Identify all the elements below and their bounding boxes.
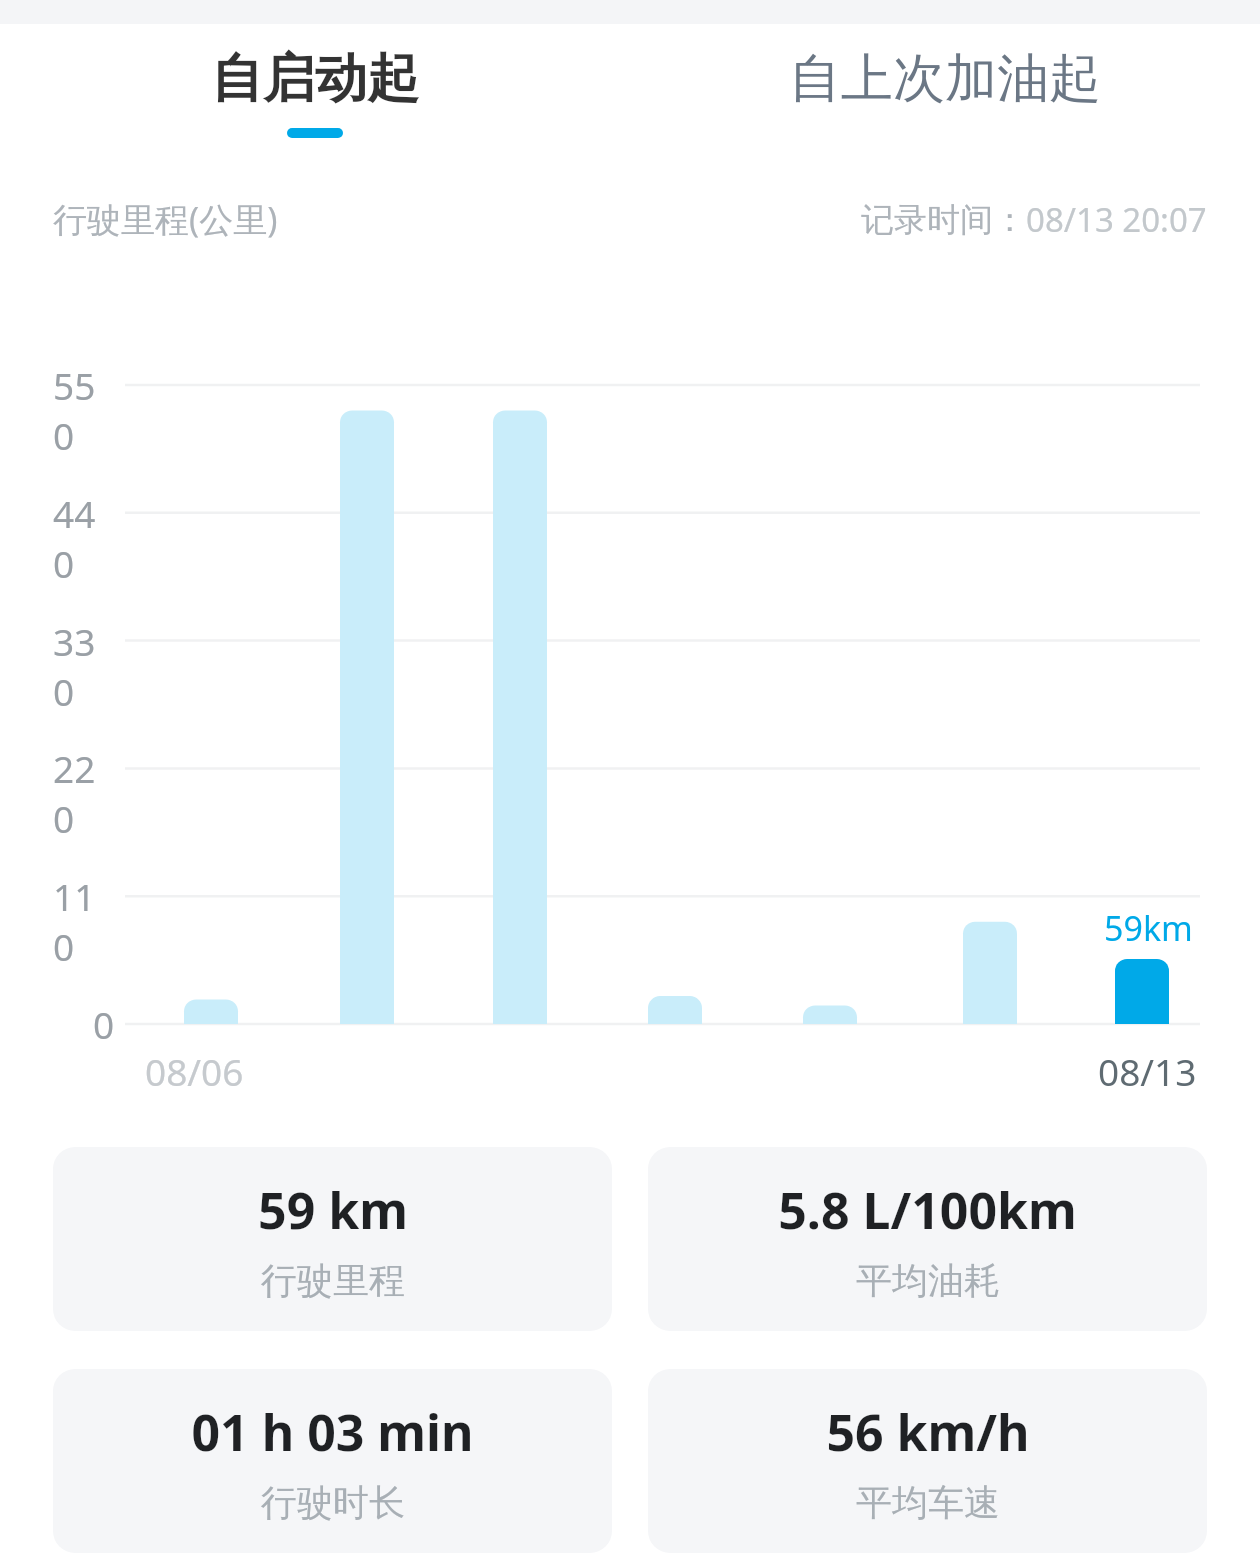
button[interactable]: 56 km/h <box>648 1369 1207 1553</box>
staticText: 550 <box>53 360 115 460</box>
staticText: 59km <box>1104 905 1193 951</box>
staticText: 59 km <box>258 1176 408 1244</box>
staticText: 0 <box>93 999 115 1049</box>
staticText: 记录时间： <box>861 199 1026 241</box>
button[interactable]: 5.8 L/100km <box>648 1147 1207 1331</box>
staticText: 行驶里程(公里) <box>53 196 278 242</box>
staticText: 110 <box>53 871 115 971</box>
staticText: 行驶里程 <box>261 1258 405 1303</box>
staticText: 自启动起 <box>211 46 419 112</box>
staticText: 220 <box>53 743 115 843</box>
staticText: 440 <box>53 488 115 588</box>
staticText: 平均油耗 <box>856 1258 1000 1303</box>
button[interactable]: 01 h 03 min <box>53 1369 612 1553</box>
staticText: 自上次加油起 <box>789 46 1101 112</box>
staticText: 08/13 <box>1098 1046 1197 1096</box>
button[interactable]: 自上次加油起 <box>630 24 1260 184</box>
staticText: 行驶时长 <box>261 1480 405 1525</box>
staticText: 56 km/h <box>826 1398 1030 1466</box>
staticText: 08/06 <box>145 1046 244 1096</box>
staticText: 平均车速 <box>856 1480 1000 1525</box>
staticText: 01 h 03 min <box>191 1398 474 1466</box>
staticText: 330 <box>53 616 115 716</box>
button[interactable]: 59 km <box>53 1147 612 1331</box>
staticText: 08/13 20:07 <box>1026 197 1207 242</box>
staticText: 5.8 L/100km <box>778 1176 1077 1244</box>
button[interactable]: 自启动起 <box>0 24 630 184</box>
